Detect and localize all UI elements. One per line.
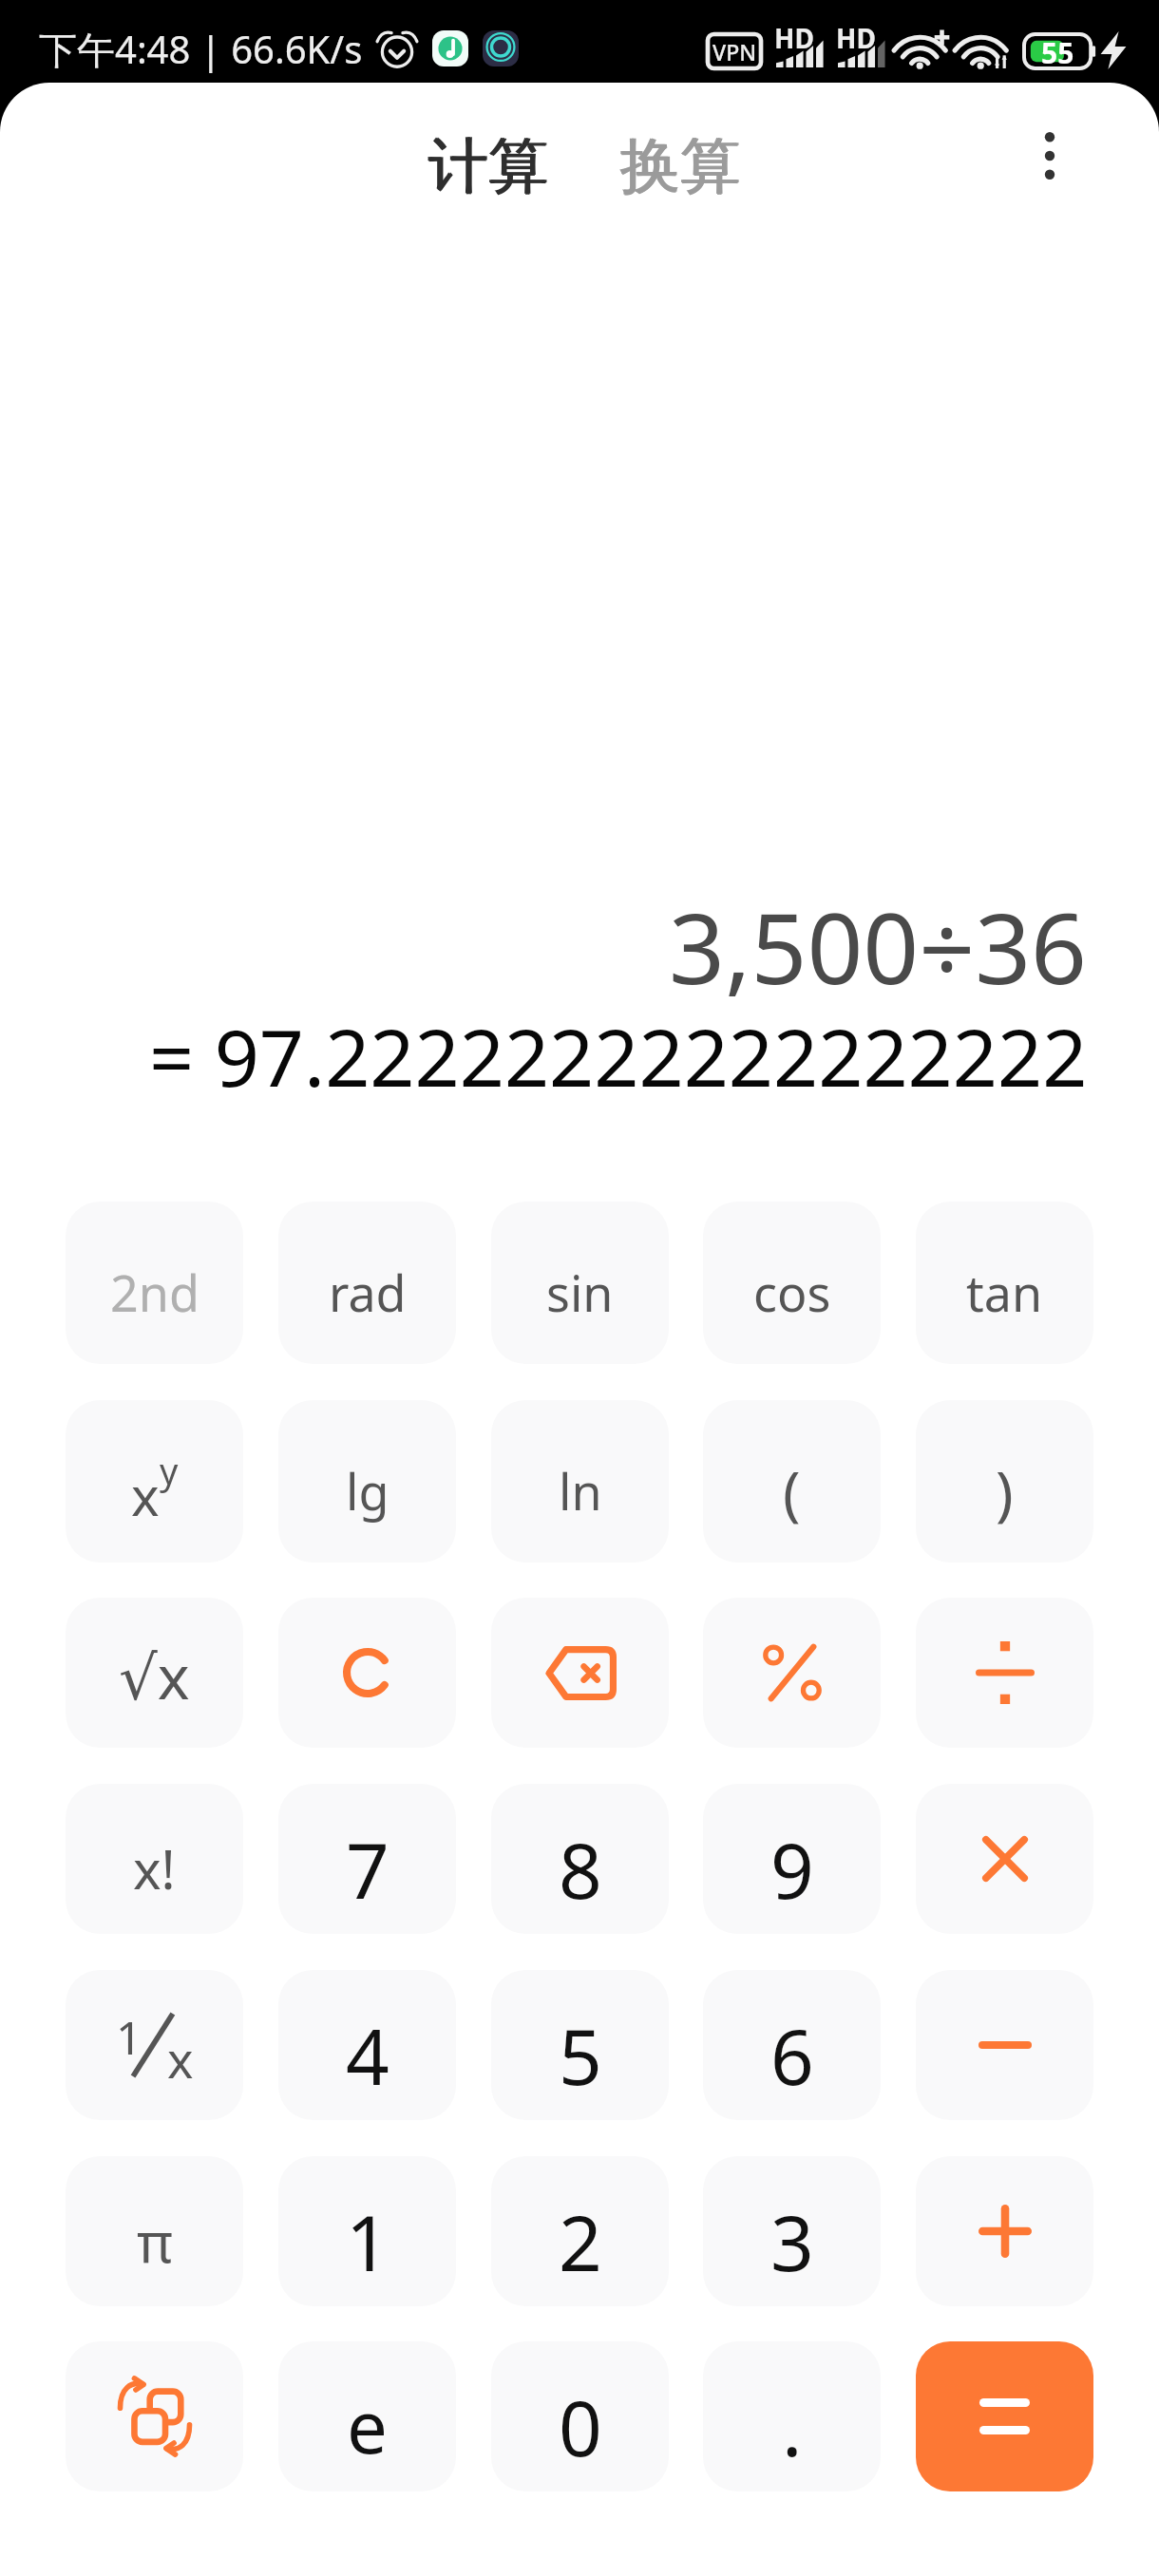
staticText: √x [119, 1635, 190, 1717]
button[interactable]: Multiply [916, 1784, 1093, 1934]
button[interactable]: . [703, 2341, 881, 2491]
staticText: 换算 [621, 128, 741, 203]
button[interactable]: 计算 [419, 115, 558, 217]
button[interactable]: lg [278, 1400, 456, 1563]
staticText: . [782, 2375, 803, 2478]
staticText: ) [996, 1451, 1014, 1531]
staticText: VPN [712, 37, 757, 66]
staticText: 2nd [110, 1259, 199, 1326]
button[interactable]: Convert [66, 2341, 243, 2491]
button[interactable]: sin [491, 1202, 669, 1364]
staticText: e [347, 2377, 388, 2475]
staticText: tan [966, 1259, 1043, 1326]
staticText: x! [133, 1832, 176, 1904]
staticText: 55 [1041, 33, 1074, 67]
staticText: rad [329, 1259, 407, 1326]
staticText: = 97.22222222222222222 [149, 1003, 1088, 1109]
staticText: 换算 [619, 128, 739, 203]
button[interactable]: 7 [278, 1784, 456, 1934]
staticText: x [131, 1459, 160, 1531]
button[interactable]: Backspace [491, 1598, 669, 1748]
staticText: sin [546, 1259, 614, 1326]
staticText: 换算 [620, 129, 740, 204]
staticText: x [167, 2025, 194, 2088]
button[interactable]: ( [703, 1400, 881, 1563]
button[interactable]: 2nd [66, 1202, 243, 1364]
staticText: ln [559, 1457, 602, 1525]
staticText: 下午4:48 | 66.6K/s [39, 23, 363, 75]
button[interactable]: ln [491, 1400, 669, 1563]
button[interactable]: 2 [491, 2156, 669, 2306]
staticText: 计算 [428, 129, 548, 204]
staticText: 计算 [427, 128, 547, 203]
button[interactable]: More options [1002, 108, 1097, 203]
button[interactable]: 换算 [611, 115, 750, 217]
button[interactable]: Equals [916, 2341, 1093, 2491]
staticText: y [160, 1446, 179, 1495]
button[interactable]: π [66, 2156, 243, 2306]
button[interactable]: x! [66, 1784, 243, 1934]
staticText: 1 [346, 2189, 389, 2293]
staticText: 0 [559, 2375, 602, 2478]
staticText: 2 [559, 2189, 602, 2293]
staticText: lg [346, 1457, 389, 1525]
button[interactable]: 9 [703, 1784, 881, 1934]
staticText: cos [753, 1259, 831, 1326]
button[interactable]: Minus [916, 1970, 1093, 2120]
staticText: 7 [346, 1817, 389, 1921]
staticText: 1 [116, 2006, 142, 2068]
button[interactable]: rad [278, 1202, 456, 1364]
button[interactable]: 1 [66, 1970, 243, 2120]
staticText: 3 [770, 2189, 814, 2293]
button[interactable]: 6 [703, 1970, 881, 2120]
staticText: π [137, 2204, 173, 2279]
staticText: 4 [346, 2003, 389, 2107]
button[interactable]: Divide [916, 1598, 1093, 1748]
button[interactable]: 3 [703, 2156, 881, 2306]
button[interactable]: Plus [916, 2156, 1093, 2306]
staticText: 9 [770, 1817, 814, 1921]
button[interactable]: Clear [278, 1598, 456, 1748]
staticText: 8 [559, 1817, 602, 1921]
button[interactable]: Percent [703, 1598, 881, 1748]
staticText: ( [783, 1451, 801, 1531]
button[interactable]: tan [916, 1202, 1093, 1364]
button[interactable]: 5 [491, 1970, 669, 2120]
button[interactable]: 8 [491, 1784, 669, 1934]
button[interactable]: 1 [278, 2156, 456, 2306]
staticText: 3,500÷36 [669, 880, 1088, 1013]
button[interactable]: cos [703, 1202, 881, 1364]
staticText: 计算 [429, 128, 549, 203]
button[interactable]: x [66, 1400, 243, 1563]
button[interactable]: e [278, 2341, 456, 2491]
staticText: 6 [770, 2003, 814, 2107]
staticText: 5 [559, 2003, 602, 2107]
staticText: HD [774, 20, 814, 51]
button[interactable]: 0 [491, 2341, 669, 2491]
staticText: HD [836, 20, 876, 51]
button[interactable]: Square root [66, 1598, 243, 1748]
button[interactable]: 4 [278, 1970, 456, 2120]
button[interactable]: ) [916, 1400, 1093, 1563]
